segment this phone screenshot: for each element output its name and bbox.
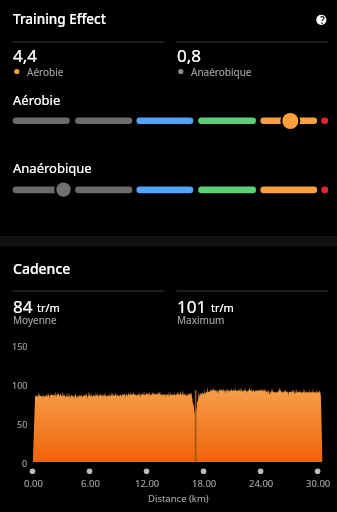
button[interactable]: Help <box>310 8 334 32</box>
staticText: 100 <box>12 379 28 391</box>
staticText: Anaérobique <box>13 159 92 177</box>
staticText: Aérobie <box>27 65 64 79</box>
staticText: Moyenne <box>13 313 57 327</box>
staticText: 150 <box>12 340 28 352</box>
staticText: Aérobie <box>13 91 61 109</box>
staticText: Cadence <box>13 259 71 278</box>
staticText: 0 <box>22 457 28 469</box>
staticText: Training Effect <box>13 10 106 28</box>
staticText: ? <box>320 13 325 27</box>
staticText: 101 <box>177 295 207 318</box>
staticText: 12.00 <box>135 477 160 490</box>
staticText: tr/m <box>211 300 234 315</box>
staticText: 0.00 <box>24 477 43 490</box>
staticText: 24.00 <box>249 477 274 490</box>
staticText: Maximum <box>177 313 225 327</box>
staticText: tr/m <box>37 300 60 315</box>
staticText: 30.00 <box>306 477 331 490</box>
staticText: 4,4 <box>13 44 38 67</box>
staticText: Anaérobique <box>191 65 252 79</box>
staticText: 18.00 <box>192 477 217 490</box>
staticText: Distance (km) <box>148 492 209 505</box>
staticText: 6.00 <box>81 477 100 490</box>
staticText: 84 <box>13 295 33 318</box>
staticText: 50 <box>17 418 28 430</box>
staticText: 0,8 <box>177 44 202 67</box>
